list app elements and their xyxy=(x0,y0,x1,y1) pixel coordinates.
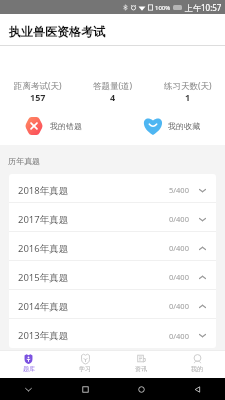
staticText: 我的收藏 xyxy=(168,121,200,131)
staticText: 0/400 xyxy=(169,331,189,341)
staticText: 2013年真题 xyxy=(18,329,69,342)
staticText: 距离考试(天) xyxy=(14,80,62,92)
button[interactable]: 2017年真题 xyxy=(9,203,216,231)
button[interactable]: 2014年真题 xyxy=(9,290,216,318)
button[interactable]: 2016年真题 xyxy=(9,232,216,260)
staticText: 上午10:57 xyxy=(185,2,222,13)
button[interactable]: 题库 xyxy=(0,351,57,373)
button[interactable]: Home xyxy=(113,385,169,394)
staticText: 0/400 xyxy=(169,301,189,311)
staticText: 题库 xyxy=(23,365,35,373)
button[interactable]: Menu xyxy=(169,385,225,394)
staticText: 我的 xyxy=(191,365,203,373)
staticText: 0/400 xyxy=(169,243,189,253)
staticText: 157 xyxy=(30,91,46,103)
staticText: 0/400 xyxy=(169,272,189,282)
button[interactable]: Recents xyxy=(57,385,113,394)
staticText: 1 xyxy=(185,91,191,103)
staticText: 2016年真题 xyxy=(18,242,69,255)
button[interactable]: 资讯 xyxy=(113,351,169,373)
button[interactable]: 2013年真题 xyxy=(9,319,216,348)
button[interactable]: 我的错题 xyxy=(0,117,112,135)
staticText: 学习 xyxy=(79,365,91,373)
staticText: 我的错题 xyxy=(50,121,82,131)
button[interactable]: 2015年真题 xyxy=(9,261,216,289)
button[interactable]: 2018年真题 xyxy=(9,174,216,202)
button[interactable]: 我的 xyxy=(169,351,225,373)
staticText: 2017年真题 xyxy=(18,213,69,226)
staticText: 执业兽医资格考试 xyxy=(9,24,105,39)
button[interactable]: Back xyxy=(0,385,57,394)
staticText: 历年真题 xyxy=(8,156,40,166)
staticText: 练习天数(天) xyxy=(164,80,212,92)
button[interactable]: 我的收藏 xyxy=(112,117,225,135)
staticText: 2018年真题 xyxy=(18,184,69,197)
staticText: 2015年真题 xyxy=(18,271,69,284)
staticText: 资讯 xyxy=(135,365,147,373)
staticText: 4 xyxy=(110,91,116,103)
button[interactable]: 学习 xyxy=(57,351,113,373)
staticText: 2014年真题 xyxy=(18,300,69,313)
staticText: 答题量(道) xyxy=(93,80,133,92)
staticText: 5/400 xyxy=(169,185,189,195)
staticText: 0/400 xyxy=(169,214,189,224)
staticText: 100% xyxy=(155,4,171,12)
